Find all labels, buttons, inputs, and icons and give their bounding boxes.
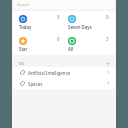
staticText: TAG bbox=[18, 61, 25, 66]
staticText: Search bbox=[17, 2, 30, 7]
button[interactable]: Today bbox=[13, 11, 62, 33]
button[interactable]: Seven Days bbox=[62, 11, 115, 33]
staticText: 3 bbox=[106, 36, 109, 42]
staticText: Artificial Intelligence bbox=[28, 70, 71, 76]
button[interactable]: Search bbox=[14, 0, 114, 9]
staticText: 1 bbox=[107, 70, 110, 76]
staticText: 3 bbox=[57, 14, 60, 20]
staticText: 0 bbox=[57, 36, 60, 42]
button[interactable]: Star bbox=[13, 33, 62, 55]
button[interactable]: Spaces bbox=[13, 78, 115, 89]
staticText: Star bbox=[19, 46, 28, 52]
staticText: 1 bbox=[107, 81, 110, 87]
staticText: Seven Days bbox=[68, 24, 92, 30]
button[interactable]: TAG bbox=[18, 60, 110, 67]
staticText: Today bbox=[19, 24, 32, 30]
button[interactable]: All bbox=[62, 33, 115, 55]
staticText: Spaces bbox=[28, 81, 43, 87]
other: Collapse tags bbox=[105, 61, 110, 66]
staticText: All bbox=[68, 46, 74, 52]
staticText: 0 bbox=[106, 14, 109, 20]
button[interactable]: Artificial Intelligence bbox=[13, 67, 115, 78]
